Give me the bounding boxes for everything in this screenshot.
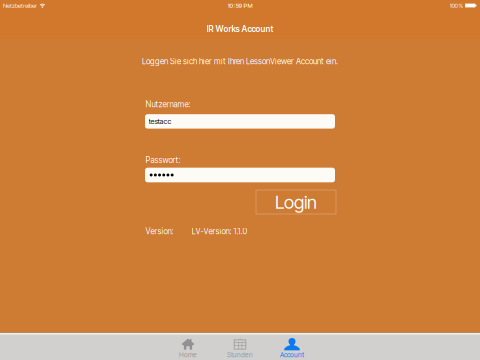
- button[interactable]: Stunden: [215, 335, 265, 360]
- staticText: Stunden: [227, 351, 253, 359]
- staticText: testacc: [148, 117, 171, 126]
- staticText: Passwort:: [145, 155, 180, 165]
- button[interactable]: Login: [256, 190, 336, 214]
- staticText: LV-Version: 1.1.0: [191, 226, 247, 236]
- staticText: 100 %: [449, 2, 463, 9]
- staticText: 10:59 PM: [227, 2, 252, 9]
- staticText: Login: [275, 191, 317, 213]
- staticText: Account: [280, 351, 304, 359]
- staticText: Nutzername:: [145, 99, 190, 109]
- button[interactable]: Home: [163, 335, 213, 360]
- staticText: Loggen Sie sich hier mit Ihren LessonVie…: [142, 56, 338, 66]
- staticText: Home: [179, 351, 197, 359]
- button[interactable]: Account: [267, 335, 317, 360]
- staticText: Version:: [145, 226, 173, 236]
- staticText: IR Works Account: [206, 24, 273, 34]
- staticText: Netzbetreiber: [3, 2, 37, 9]
